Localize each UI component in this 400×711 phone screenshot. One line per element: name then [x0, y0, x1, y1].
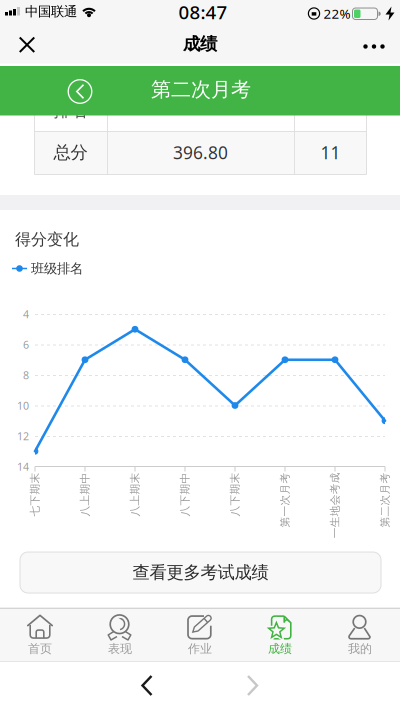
staticText: 中国联通 — [25, 3, 77, 20]
button[interactable]: 表现 — [80, 608, 160, 661]
button[interactable]: 查看更多考试成绩 — [20, 552, 381, 593]
button[interactable]: 作业 — [160, 608, 240, 661]
staticText: 第二次月考 — [151, 77, 251, 102]
staticText: 成绩 — [183, 33, 217, 55]
staticText: 我的 — [348, 641, 372, 656]
staticText: 表现 — [108, 641, 132, 656]
button[interactable]: Back — [125, 661, 169, 710]
staticText: 第一次月考 — [257, 493, 312, 506]
staticText: 第二次月考 — [357, 493, 400, 506]
staticText: 查看更多考试成绩 — [132, 562, 268, 583]
staticText: 396.80 — [173, 141, 228, 164]
staticText: 八上期末 — [113, 488, 157, 501]
staticText: 八上期中 — [63, 488, 107, 501]
button[interactable]: Close — [5, 23, 49, 66]
staticText: 总分 — [53, 142, 87, 163]
button[interactable]: 首页 — [0, 608, 80, 661]
staticText: 得分变化 — [15, 230, 79, 249]
staticText: 08:47 — [178, 0, 227, 24]
staticText: 一生地会考成 — [302, 499, 368, 512]
staticText: 七下期末 — [13, 488, 57, 501]
staticText: 班级排名 — [31, 260, 83, 277]
button[interactable]: 成绩 — [240, 608, 320, 661]
staticText: 排名 — [53, 100, 87, 121]
button[interactable]: Forward — [230, 661, 274, 710]
staticText: 首页 — [28, 641, 52, 656]
staticText: 14 — [17, 459, 29, 474]
staticText: 10 — [17, 398, 29, 413]
staticText: 作业 — [188, 641, 212, 656]
staticText: 22% — [323, 5, 350, 22]
staticText: 11 — [320, 141, 340, 164]
button[interactable]: More — [352, 23, 396, 66]
staticText: 成绩 — [268, 641, 292, 656]
staticText: 4 — [23, 307, 29, 321]
button[interactable]: Back — [63, 74, 97, 108]
staticText: 八下期中 — [163, 488, 207, 501]
staticText: 八下期末 — [213, 488, 257, 501]
staticText: 8 — [23, 368, 29, 382]
staticText: 12 — [17, 429, 29, 443]
staticText: 6 — [23, 337, 29, 352]
button[interactable]: 我的 — [320, 608, 400, 661]
